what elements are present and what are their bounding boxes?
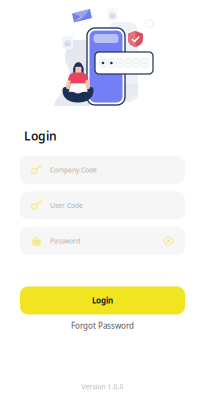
- staticText: Password: [50, 236, 80, 245]
- staticText: Forgot Password: [71, 320, 134, 331]
- button[interactable]: Forgot Password: [71, 320, 134, 331]
- staticText: Version 1.0.0: [81, 382, 123, 391]
- staticText: Login: [92, 295, 113, 306]
- staticText: Login: [24, 128, 57, 144]
- staticText: Company Code: [50, 165, 97, 174]
- staticText: User Code: [50, 201, 83, 210]
- button[interactable]: Login: [20, 286, 185, 314]
